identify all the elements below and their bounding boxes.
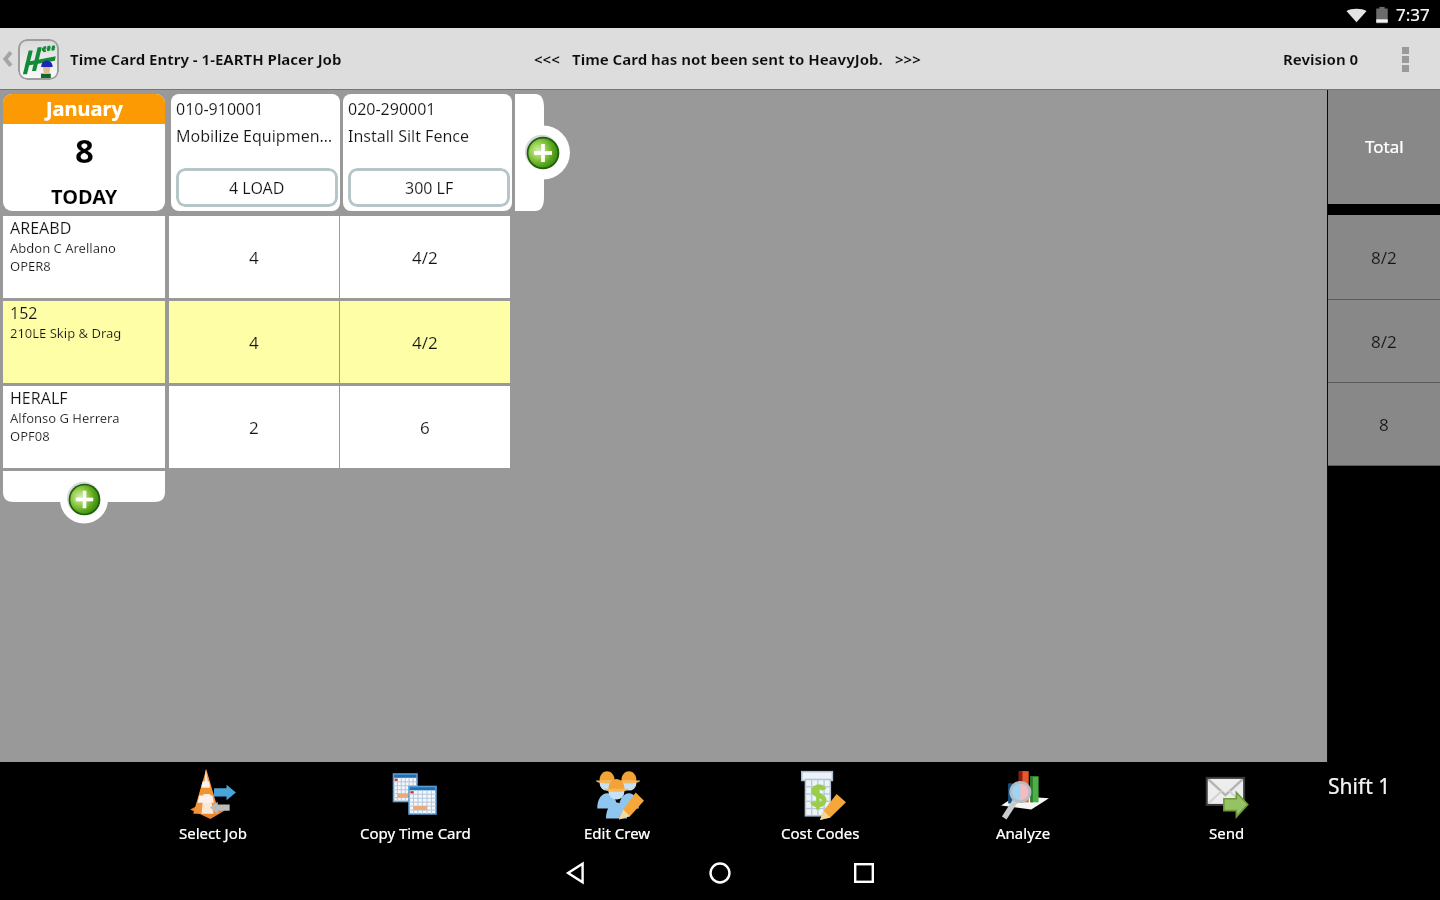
staticText: 8 [1379,413,1389,436]
staticText: 4 [249,246,259,269]
staticText: 010-910001 [176,98,264,120]
staticText: Time Card has not been sent to HeavyJob. [572,49,883,69]
button[interactable]: 300 LF [348,168,510,207]
staticText: Send [1209,823,1245,843]
button[interactable]: Recents [840,849,888,897]
button[interactable]: Home [696,849,744,897]
staticText: 2 [249,416,259,439]
button[interactable]: Cost Codes [719,762,922,845]
button[interactable]: 8/2 [1328,300,1440,383]
staticText: Total [1365,135,1404,158]
button[interactable]: January [3,94,165,211]
button[interactable]: HERALF [3,386,165,468]
staticText: Install Silt Fence [348,125,470,147]
button[interactable]: 152 [3,301,165,383]
button[interactable]: 4 [169,301,339,383]
button[interactable]: More options [1370,28,1440,90]
staticText: 6 [420,416,430,439]
button[interactable]: 010-910001 [171,94,340,211]
button[interactable]: Back [552,849,600,897]
staticText: Abdon C Arellano [10,239,116,257]
button[interactable]: <<< [534,28,921,90]
staticText: 020-290001 [348,98,436,120]
button[interactable]: Analyze [922,762,1125,845]
staticText: Copy Time Card [360,823,471,843]
staticText: 7:37 [1396,3,1430,26]
staticText: AREABD [10,217,72,239]
button[interactable]: Add [68,483,101,516]
staticText: Cost Codes [781,823,860,843]
button[interactable]: Edit Crew [516,762,719,845]
button[interactable]: Add [526,136,560,170]
staticText: Shift 1 [1328,772,1391,801]
staticText: OPER8 [10,257,51,275]
button[interactable]: 8/2 [1328,215,1440,300]
staticText: <<< [534,49,560,69]
staticText: 4/2 [412,331,438,354]
staticText: 4 LOAD [229,177,285,199]
staticText: OPF08 [10,427,50,445]
staticText: Analyze [996,823,1051,843]
button[interactable]: 4/2 [340,301,510,383]
button[interactable]: 4/2 [340,216,510,298]
staticText: Time Card Entry - 1-EARTH Placer Job [70,49,342,69]
staticText: 300 LF [405,177,454,199]
staticText: HERALF [10,387,68,409]
staticText: Select Job [179,823,247,843]
staticText: 8/2 [1371,246,1397,269]
staticText: Edit Crew [584,823,651,843]
staticText: Alfonso G Herrera [10,409,120,427]
button[interactable]: 4 [169,216,339,298]
button[interactable]: 8 [1328,383,1440,466]
staticText: Mobilize Equipment ... [176,125,338,147]
staticText: >>> [895,49,921,69]
staticText: 8/2 [1371,330,1397,353]
button[interactable]: AREABD [3,216,165,298]
button[interactable]: Copy Time Card [314,762,516,845]
staticText: Revision 0 [1283,49,1359,69]
staticText: January [46,95,123,122]
staticText: TODAY [51,183,118,210]
button[interactable]: 6 [340,386,510,468]
button[interactable]: 4 LOAD [176,168,338,207]
staticText: 210LE Skip & Drag [10,324,122,342]
staticText: 152 [10,302,38,324]
button[interactable]: 2 [169,386,339,468]
staticText: 8 [75,128,94,173]
button[interactable]: Send [1125,762,1328,845]
button[interactable]: 020-290001 [343,94,512,211]
staticText: 4/2 [412,246,438,269]
button[interactable]: Navigate up [2,28,59,90]
button[interactable]: Select Job [112,762,314,845]
staticText: 4 [249,331,259,354]
button[interactable]: Shift 1 [1328,762,1440,845]
